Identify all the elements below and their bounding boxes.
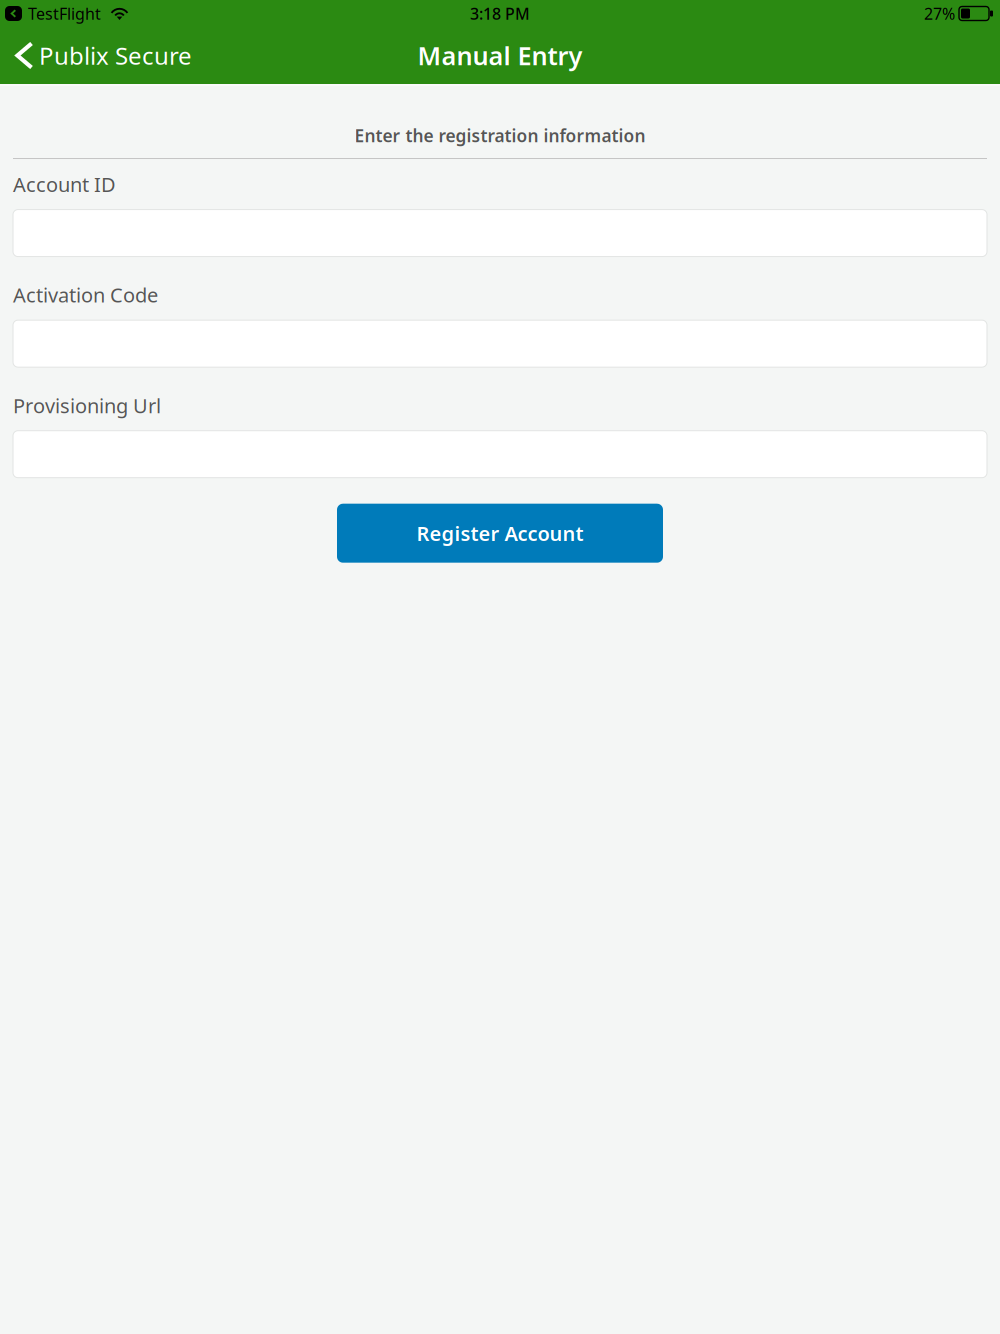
staticText: 27% bbox=[924, 3, 955, 24]
button[interactable]: Register Account bbox=[337, 504, 663, 563]
staticText: Register Account bbox=[416, 520, 583, 546]
staticText: TestFlight bbox=[28, 3, 101, 24]
button[interactable]: Account ID bbox=[13, 210, 987, 257]
staticText: Account ID bbox=[13, 171, 116, 198]
button[interactable]: Activation Code bbox=[13, 320, 987, 367]
staticText: Enter the registration information bbox=[354, 124, 645, 147]
button[interactable]: Back to TestFlight bbox=[5, 3, 101, 24]
staticText: Manual Entry bbox=[417, 39, 582, 72]
button[interactable]: Publix Secure bbox=[0, 32, 192, 79]
staticText: 3:18 PM bbox=[470, 3, 530, 24]
staticText: Activation Code bbox=[13, 282, 158, 308]
staticText: Publix Secure bbox=[39, 40, 192, 71]
staticText: Provisioning Url bbox=[13, 392, 161, 419]
button[interactable]: Provisioning Url bbox=[13, 431, 987, 478]
